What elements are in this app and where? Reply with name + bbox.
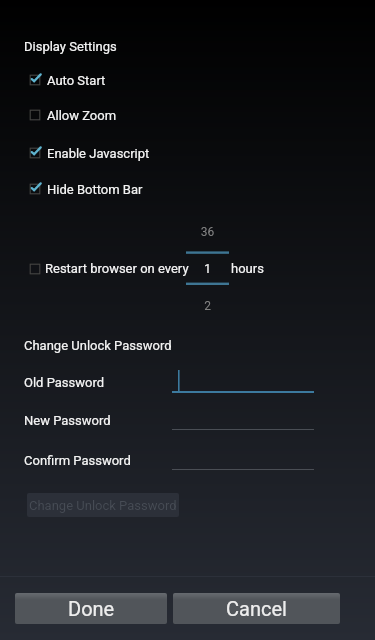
staticText: Confirm Password xyxy=(24,453,131,468)
staticText: Change Unlock Password xyxy=(29,498,177,513)
button[interactable]: Allow Zoom xyxy=(0,98,375,132)
staticText: hours xyxy=(231,261,264,276)
staticText: Cancel xyxy=(226,597,287,620)
staticText: Hide Bottom Bar xyxy=(47,182,143,197)
button[interactable]: Cancel xyxy=(173,593,340,624)
staticText: Old Password xyxy=(24,375,105,390)
button[interactable]: Change Unlock Password xyxy=(27,493,179,517)
button[interactable]: Hide Bottom Bar xyxy=(0,172,375,206)
button[interactable]: Restart browser on every xyxy=(0,251,375,286)
button[interactable]: Confirm Password xyxy=(0,451,375,477)
staticText: Restart browser on every xyxy=(45,261,189,276)
staticText: 36 xyxy=(186,225,229,239)
button[interactable]: Auto Start xyxy=(0,63,375,97)
staticText: New Password xyxy=(24,413,111,428)
staticText: Enable Javascript xyxy=(47,146,150,161)
staticText: 2 xyxy=(186,299,229,313)
staticText: 1 xyxy=(186,262,229,276)
staticText: Display Settings xyxy=(24,39,117,54)
button[interactable]: Done xyxy=(15,593,167,624)
staticText: Allow Zoom xyxy=(47,108,117,123)
staticText: Change Unlock Password xyxy=(24,338,172,353)
button[interactable]: Enable Javascript xyxy=(0,136,375,170)
button[interactable]: 36 xyxy=(186,222,229,314)
button[interactable]: New Password xyxy=(0,411,375,437)
button[interactable]: Old Password xyxy=(0,373,375,399)
staticText: Auto Start xyxy=(47,73,106,88)
staticText: Done xyxy=(68,597,115,620)
